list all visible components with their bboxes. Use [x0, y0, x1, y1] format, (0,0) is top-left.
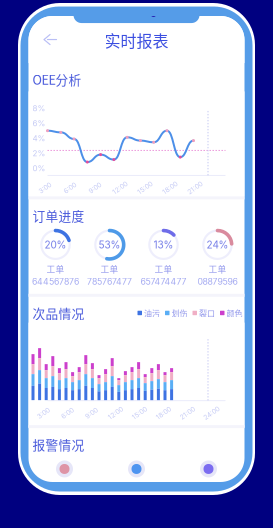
- staticText: 报警情况: [32, 435, 84, 453]
- staticText: 3:00: [36, 409, 50, 417]
- staticText: 644567876: [32, 276, 79, 287]
- staticText: OEE分析: [32, 70, 81, 88]
- staticText: 08879596: [197, 276, 237, 287]
- staticText: 油污: [144, 307, 160, 319]
- staticText: 12:00: [111, 184, 128, 192]
- staticText: 6:00: [60, 409, 74, 417]
- staticText: 18:00: [161, 184, 178, 192]
- staticText: 15:00: [131, 409, 148, 417]
- staticText: 工单: [154, 263, 172, 275]
- staticText: 24%: [206, 239, 228, 251]
- staticText: 次品情况: [32, 304, 84, 322]
- staticText: 21:00: [179, 409, 196, 417]
- staticText: 9:00: [88, 184, 102, 192]
- staticText: 12:00: [107, 409, 124, 417]
- staticText: 工单: [100, 263, 118, 275]
- staticText: 工单: [208, 263, 226, 275]
- staticText: 划伤: [171, 307, 187, 319]
- staticText: 24:00: [202, 409, 220, 417]
- button[interactable]: Back: [32, 27, 62, 53]
- staticText: 15:00: [136, 184, 153, 192]
- staticText: 785767477: [87, 276, 132, 287]
- staticText: 657474477: [140, 276, 186, 287]
- staticText: 0%: [32, 164, 45, 173]
- staticText: 裂口: [199, 307, 215, 319]
- staticText: 3:00: [38, 184, 52, 192]
- staticText: 工单: [46, 263, 64, 275]
- staticText: 53%: [98, 239, 120, 251]
- staticText: 6:00: [63, 184, 77, 192]
- staticText: 8%: [32, 104, 45, 113]
- staticText: 订单进度: [32, 206, 84, 225]
- staticText: 20%: [44, 239, 66, 251]
- staticText: 9:00: [84, 409, 98, 417]
- staticText: 4%: [32, 134, 45, 143]
- staticText: 2%: [32, 149, 45, 158]
- staticText: 实时报表: [104, 28, 168, 52]
- staticText: 13%: [153, 239, 173, 251]
- staticText: 6%: [32, 119, 45, 128]
- staticText: 颜色: [226, 307, 242, 319]
- staticText: 18:00: [155, 409, 172, 417]
- staticText: 21:00: [186, 184, 203, 192]
